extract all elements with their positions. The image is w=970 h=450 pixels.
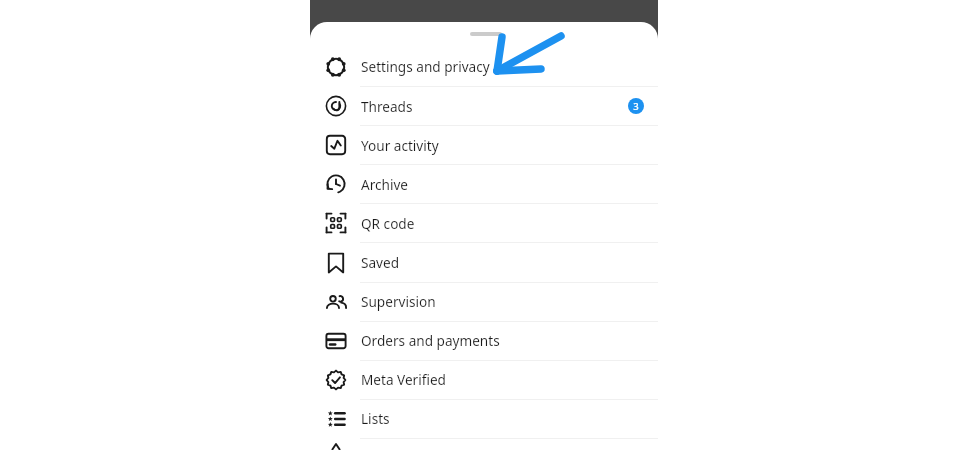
staticText: 3 (633, 100, 639, 113)
staticText: Saved (361, 253, 400, 272)
button[interactable]: Archive (310, 165, 658, 204)
staticText: Supervision (361, 292, 436, 311)
staticText: QR code (361, 214, 415, 233)
button[interactable]: Settings and privacy (310, 47, 658, 86)
button[interactable]: Threads (310, 87, 658, 126)
staticText: Settings and privacy (361, 57, 490, 76)
button[interactable]: Meta Verified (310, 360, 658, 399)
button[interactable]: Supervision (310, 282, 658, 321)
staticText: Archive (361, 175, 409, 194)
staticText: Your activity (361, 136, 439, 155)
staticText: Meta Verified (361, 370, 446, 389)
button[interactable]: Your activity (310, 126, 658, 165)
staticText: Lists (361, 409, 390, 428)
staticText: Threads (361, 97, 413, 116)
staticText: Orders and payments (361, 331, 500, 350)
button[interactable]: Orders and payments (310, 321, 658, 360)
button[interactable]: Saved (310, 243, 658, 282)
button[interactable]: Lists (310, 399, 658, 438)
button[interactable]: QR code (310, 204, 658, 243)
